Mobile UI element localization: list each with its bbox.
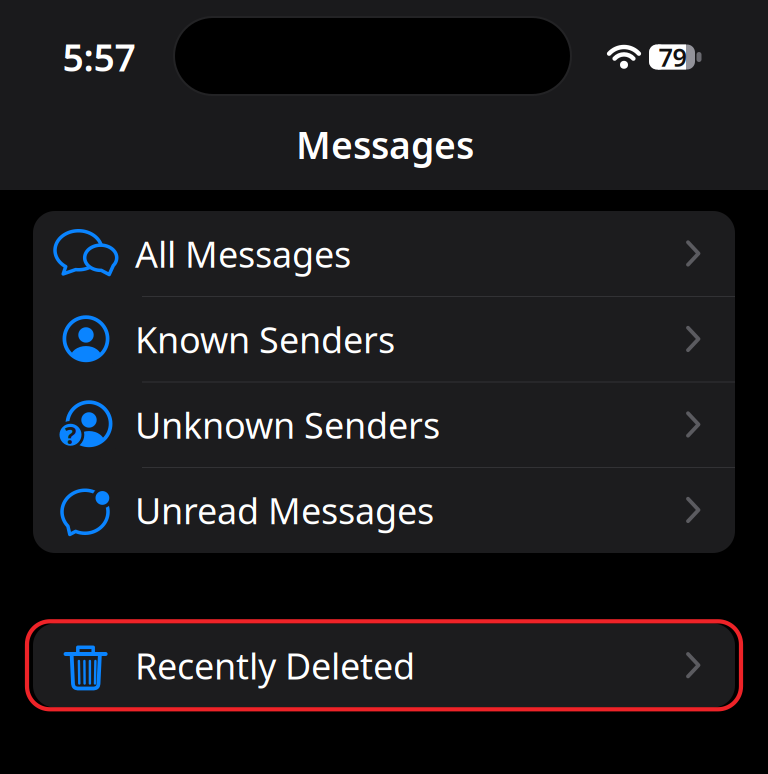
button[interactable]: Recently Deleted xyxy=(33,623,735,707)
staticText: ? xyxy=(65,419,76,451)
button[interactable]: ? xyxy=(33,382,735,467)
staticText: Recently Deleted xyxy=(135,642,415,689)
button[interactable]: Known Senders xyxy=(33,296,735,382)
staticText: Messages xyxy=(296,120,474,169)
staticText: Unknown Senders xyxy=(135,401,440,449)
staticText: 5:57 xyxy=(62,32,135,82)
staticText: Unread Messages xyxy=(135,486,434,534)
staticText: 79 xyxy=(658,40,686,74)
button[interactable]: Unread Messages xyxy=(33,467,735,553)
button[interactable]: All Messages xyxy=(33,211,735,296)
staticText: Known Senders xyxy=(135,315,395,363)
staticText: All Messages xyxy=(135,230,351,278)
